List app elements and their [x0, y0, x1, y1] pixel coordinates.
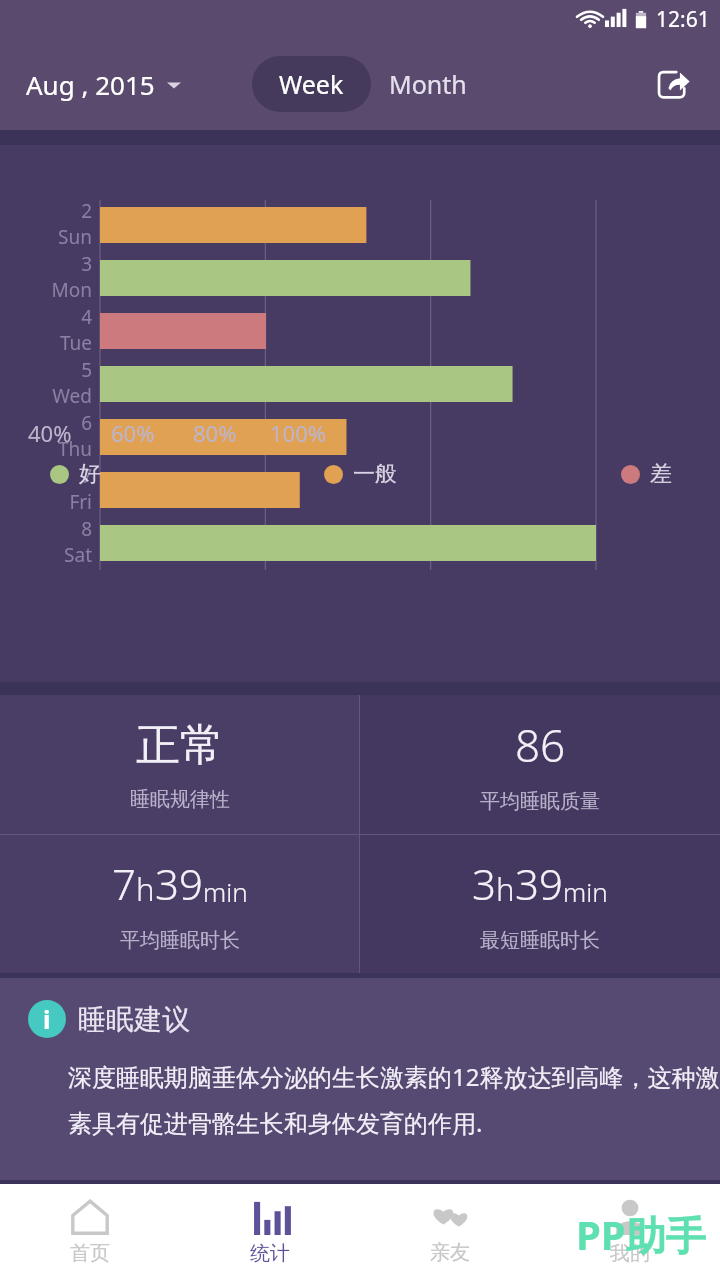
button[interactable]: Aug , 2015: [26, 67, 181, 102]
staticText: 39: [155, 855, 203, 912]
button[interactable]: 正常: [0, 695, 359, 834]
staticText: 3: [81, 251, 92, 277]
button[interactable]: 7: [0, 835, 359, 973]
staticText: Week: [279, 67, 344, 101]
staticText: 平均睡眠时长: [120, 928, 240, 953]
button[interactable]: Month: [371, 56, 485, 112]
staticText: Month: [389, 67, 467, 101]
staticText: 39: [515, 855, 563, 912]
staticText: 7: [81, 463, 92, 489]
staticText: i: [43, 1002, 51, 1036]
staticText: 100%: [270, 418, 327, 448]
staticText: 首页: [70, 1241, 110, 1266]
staticText: h: [136, 868, 155, 910]
staticText: 一般: [353, 460, 397, 488]
staticText: 正常: [136, 718, 224, 773]
staticText: 深度睡眠期脑垂体分泌的生长激素的12释放达到高峰，这种激素具有促进骨骼生长和身体…: [68, 1060, 720, 1139]
button[interactable]: 86: [360, 695, 720, 834]
staticText: 好: [79, 460, 101, 488]
staticText: 86: [515, 715, 566, 775]
staticText: 8: [81, 516, 92, 542]
button[interactable]: 3: [360, 835, 720, 973]
staticText: 40%: [28, 418, 72, 448]
staticText: 12:61: [656, 5, 710, 34]
staticText: min: [563, 874, 608, 909]
button[interactable]: Week: [252, 56, 371, 112]
staticText: Tue: [59, 330, 92, 356]
staticText: 睡眠建议: [78, 1002, 190, 1037]
staticText: 4: [81, 304, 92, 330]
staticText: h: [496, 868, 515, 910]
staticText: 平均睡眠质量: [480, 789, 600, 814]
staticText: 5: [81, 357, 92, 383]
staticText: Mon: [51, 277, 92, 303]
staticText: 最短睡眠时长: [480, 928, 600, 953]
staticText: Sat: [64, 542, 92, 568]
staticText: 2: [81, 198, 92, 224]
staticText: PP助手: [576, 1207, 706, 1262]
button[interactable]: 统计: [180, 1184, 360, 1280]
button[interactable]: Share: [646, 58, 698, 110]
staticText: 统计: [250, 1241, 290, 1266]
staticText: 60%: [111, 418, 155, 448]
staticText: min: [203, 874, 248, 909]
staticText: 6: [81, 410, 92, 436]
staticText: 80%: [193, 418, 237, 448]
staticText: 7: [112, 855, 136, 912]
staticText: Sun: [58, 224, 92, 250]
button[interactable]: 我的: [540, 1184, 720, 1280]
staticText: 亲友: [430, 1240, 470, 1265]
staticText: 差: [650, 460, 672, 488]
staticText: Thu: [57, 436, 92, 462]
staticText: 我的: [610, 1241, 650, 1266]
staticText: Fri: [69, 489, 92, 515]
staticText: Wed: [52, 383, 92, 409]
button[interactable]: 首页: [0, 1184, 180, 1280]
button[interactable]: 亲友: [360, 1184, 540, 1280]
staticText: Aug , 2015: [26, 67, 155, 102]
staticText: 3: [472, 855, 496, 912]
button[interactable]: i: [0, 978, 720, 1153]
staticText: 睡眠规律性: [130, 787, 230, 812]
